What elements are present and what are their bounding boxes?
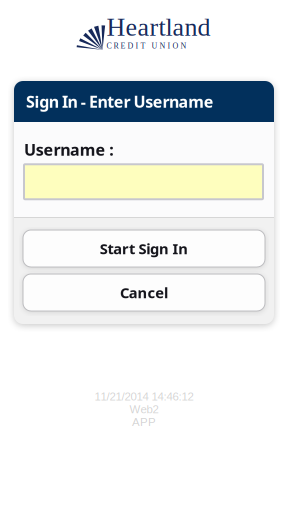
- staticText: Username :: [24, 139, 113, 160]
- staticText: C R E D I T U N I O N: [106, 41, 186, 50]
- staticText: Heartland: [106, 13, 210, 41]
- button[interactable]: Start Sign In: [23, 230, 265, 267]
- staticText: APP: [132, 416, 156, 428]
- staticText: Cancel: [120, 283, 168, 302]
- staticText: Sign In - Enter Username: [26, 91, 214, 112]
- staticText: 11/21/2014 14:46:12: [94, 390, 193, 403]
- staticText: Start Sign In: [100, 239, 188, 258]
- button[interactable]: Cancel: [23, 274, 265, 311]
- staticText: Web2: [129, 403, 158, 416]
